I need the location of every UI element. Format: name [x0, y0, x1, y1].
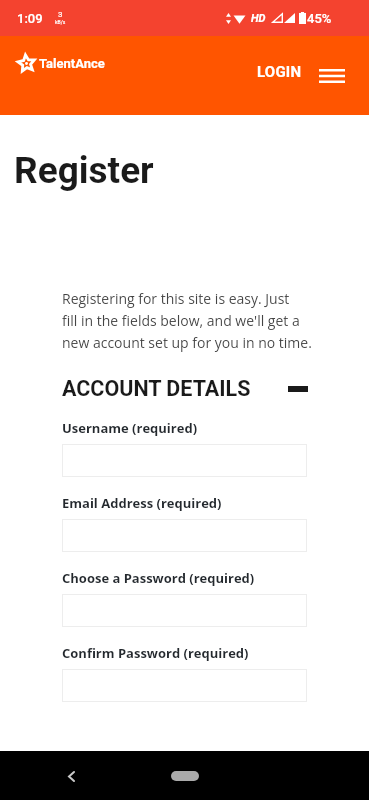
staticText: Username (required) [62, 419, 198, 437]
button[interactable] [62, 594, 307, 627]
staticText: kB/s [55, 19, 66, 25]
button[interactable] [62, 444, 307, 477]
staticText: Choose a Password (required) [62, 569, 255, 587]
staticText: Email Address (required) [62, 494, 222, 512]
staticText: ACCOUNT DETAILS [62, 376, 251, 401]
button[interactable] [62, 669, 307, 702]
staticText: Registering for this site is easy. Just … [62, 289, 324, 352]
staticText: Register [14, 149, 154, 192]
button[interactable]: Menu [313, 63, 351, 89]
staticText: Confirm Password (required) [62, 644, 249, 662]
staticText: HD [251, 12, 266, 25]
staticText: 45% [307, 11, 332, 26]
staticText: 3 [58, 10, 63, 19]
button[interactable] [62, 519, 307, 552]
button[interactable]: Home [171, 771, 199, 781]
button[interactable]: Collapse section [285, 378, 307, 400]
button[interactable]: TalentAnce [0, 50, 120, 80]
button[interactable]: Back [57, 762, 85, 790]
staticText: LOGIN [257, 63, 302, 81]
button[interactable]: LOGIN [249, 54, 310, 90]
staticText: TalentAnce [39, 56, 105, 71]
staticText: 1:09 [17, 11, 43, 26]
